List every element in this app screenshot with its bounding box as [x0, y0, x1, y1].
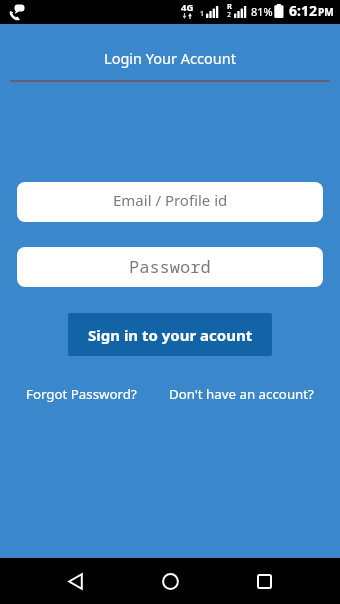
staticText: Password [129, 255, 211, 278]
button[interactable]: Don't have an account? [169, 385, 314, 403]
button[interactable] [140, 558, 200, 604]
staticText: Email / Profile id [113, 190, 228, 210]
staticText: 6:12 [289, 1, 317, 20]
staticText: Login Your Account [0, 48, 340, 68]
staticText: 2 [227, 10, 232, 20]
button[interactable]: Sign in to your acount [68, 313, 272, 356]
button[interactable]: Forgot Password? [26, 385, 137, 403]
button[interactable]: Email / Profile id [17, 182, 323, 222]
staticText: PM [318, 5, 334, 19]
staticText: 1 [200, 9, 205, 19]
button[interactable] [234, 558, 294, 604]
staticText: Sign in to your acount [88, 325, 253, 345]
staticText: 81% [251, 4, 273, 19]
staticText: Forgot Password? [26, 385, 137, 403]
button[interactable] [45, 558, 105, 604]
button[interactable]: Password [17, 247, 323, 287]
staticText: Don't have an account? [169, 385, 314, 403]
staticText: 4G [181, 1, 194, 14]
staticText: R [227, 1, 232, 11]
